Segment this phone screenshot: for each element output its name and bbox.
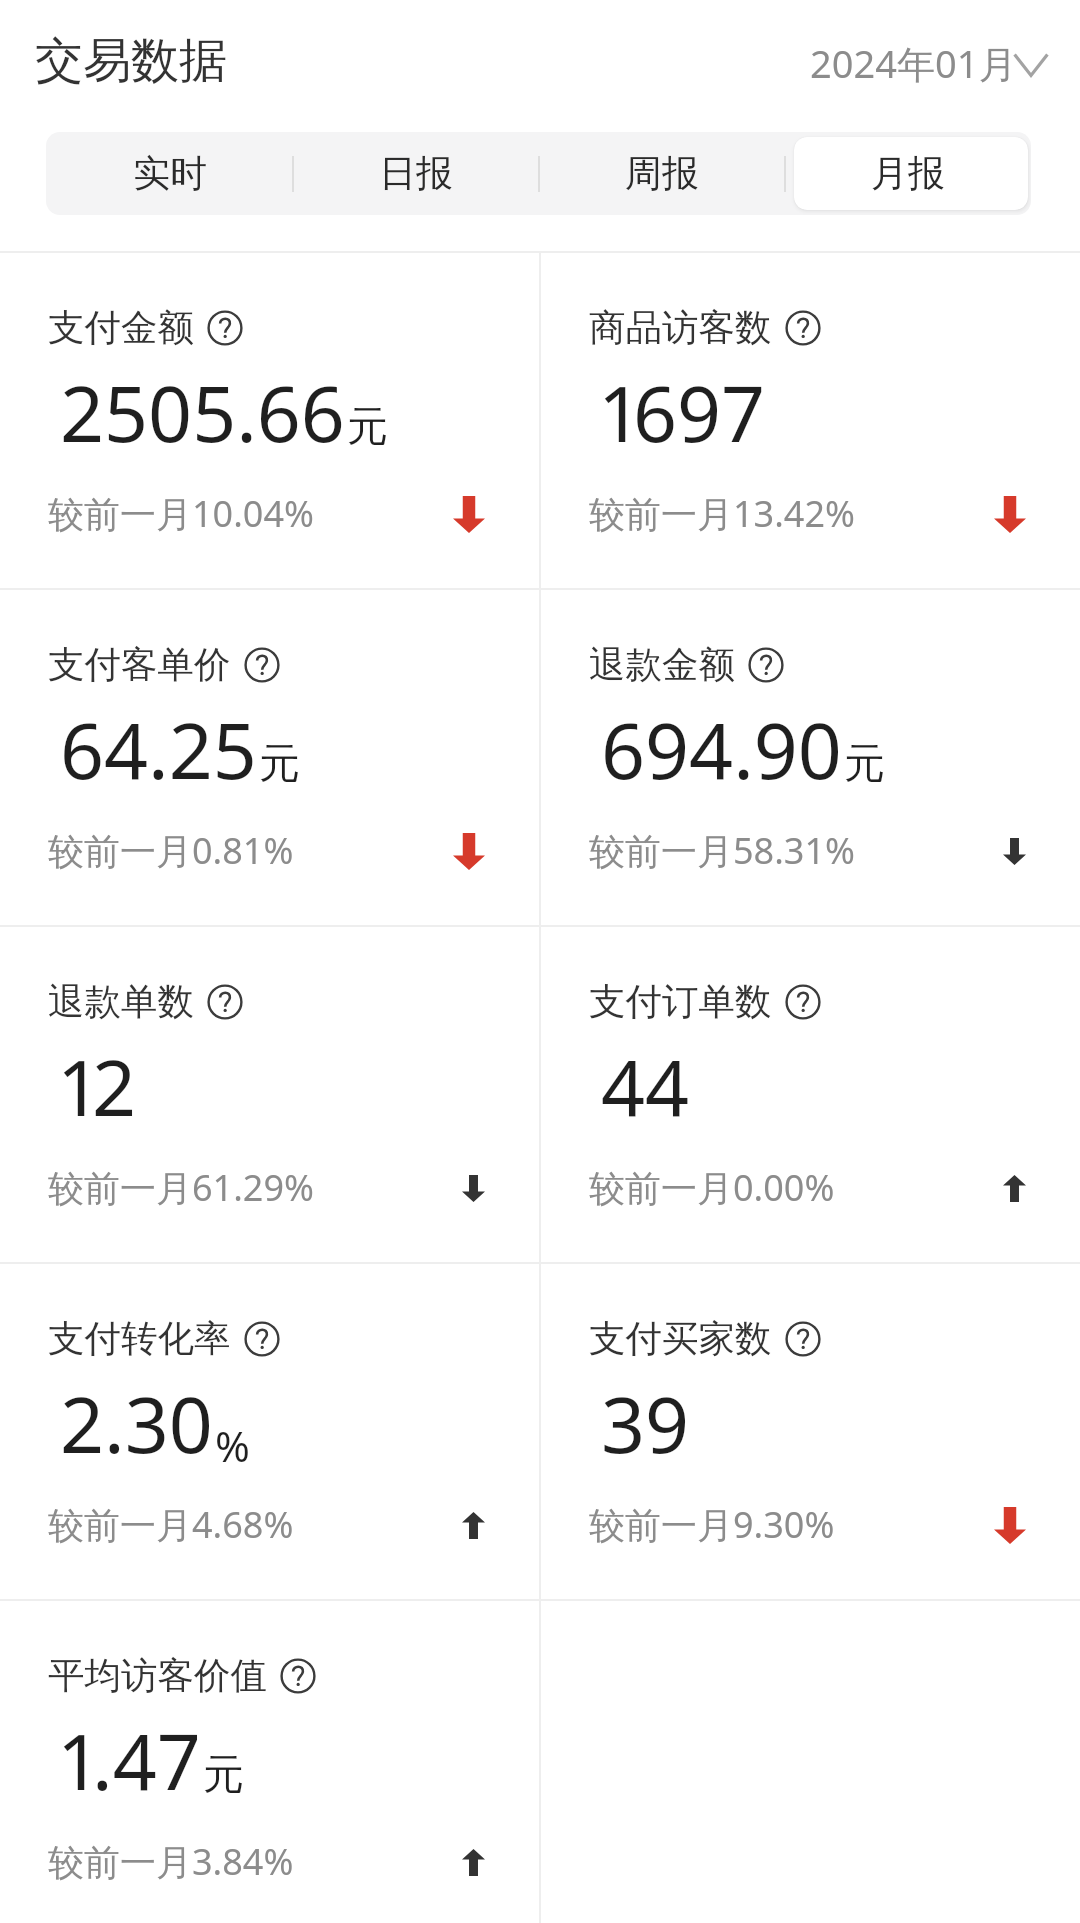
button[interactable]: 选择月份 2024年01月 <box>810 37 1053 89</box>
staticText: 平均访客价值 <box>48 1653 267 1699</box>
button[interactable]: 平均访客价值 <box>0 1601 539 1923</box>
staticText: 44 <box>601 1034 690 1139</box>
staticText: 较前一月13.42% <box>589 489 855 538</box>
staticText: 39 <box>601 1371 690 1476</box>
other: 上升 <box>1003 1175 1026 1202</box>
staticText: 元 <box>347 401 388 453</box>
staticText: 实时 <box>133 150 207 197</box>
staticText: 较前一月3.84% <box>48 1837 294 1886</box>
button[interactable]: 支付金额 <box>0 253 539 588</box>
staticText: 较前一月10.04% <box>48 489 314 538</box>
staticText: 1 <box>57 1708 92 1813</box>
staticText: 支付转化率 <box>48 1316 231 1362</box>
button[interactable]: 支付客单价 <box>0 590 539 925</box>
staticText: 2.30 <box>60 1371 213 1476</box>
button[interactable]: 商品访客数 <box>541 253 1080 588</box>
button[interactable]: 周报 <box>539 132 785 215</box>
staticText: 支付买家数 <box>589 1316 772 1362</box>
other: 下降 <box>994 1507 1026 1544</box>
staticText: 694.90 <box>601 697 842 802</box>
button[interactable]: 日报 <box>293 132 539 215</box>
staticText: 支付客单价 <box>48 642 231 688</box>
staticText: 商品访客数 <box>589 305 772 351</box>
button[interactable]: 支付转化率 <box>0 1264 539 1599</box>
other: 上升 <box>462 1512 485 1539</box>
staticText: 退款单数 <box>48 979 194 1025</box>
staticText: 元 <box>203 1749 244 1801</box>
staticText: 较前一月0.81% <box>48 826 294 875</box>
other: 上升 <box>462 1849 485 1876</box>
staticText: 697 <box>633 360 766 465</box>
other: 下降 <box>453 833 485 870</box>
staticText: 支付金额 <box>48 305 194 351</box>
other: 下降 <box>453 496 485 533</box>
staticText: 元 <box>259 738 300 790</box>
button[interactable]: 实时 <box>46 132 293 215</box>
button[interactable]: 退款金额 <box>541 590 1080 925</box>
staticText: 周报 <box>625 150 699 197</box>
staticText: 较前一月9.30% <box>589 1500 835 1549</box>
staticText: 64.25 <box>60 697 257 802</box>
staticText: 月报 <box>871 150 945 197</box>
button[interactable]: 月报 <box>785 132 1031 215</box>
button[interactable]: 退款单数 <box>0 927 539 1262</box>
staticText: 交易数据 <box>35 31 227 91</box>
staticText: 较前一月58.31% <box>589 826 855 875</box>
button[interactable]: 支付买家数 <box>541 1264 1080 1599</box>
other: 下降 <box>1003 838 1026 865</box>
staticText: .47 <box>92 1708 201 1813</box>
staticText: 元 <box>844 738 885 790</box>
other: 下降 <box>994 496 1026 533</box>
other: 下降 <box>462 1175 485 1202</box>
staticText: 日报 <box>379 150 453 197</box>
staticText: 1 <box>598 360 633 465</box>
staticText: 较前一月61.29% <box>48 1163 314 1212</box>
staticText: 支付订单数 <box>589 979 772 1025</box>
staticText: 1 <box>57 1034 92 1139</box>
staticText: % <box>215 1417 250 1474</box>
staticText: 退款金额 <box>589 642 735 688</box>
staticText: 较前一月0.00% <box>589 1163 835 1212</box>
button[interactable]: 支付订单数 <box>541 927 1080 1262</box>
staticText: 2 <box>92 1034 137 1139</box>
staticText: 2505.66 <box>60 360 345 465</box>
staticText: 2024年01月 <box>810 37 1017 89</box>
staticText: 较前一月4.68% <box>48 1500 294 1549</box>
